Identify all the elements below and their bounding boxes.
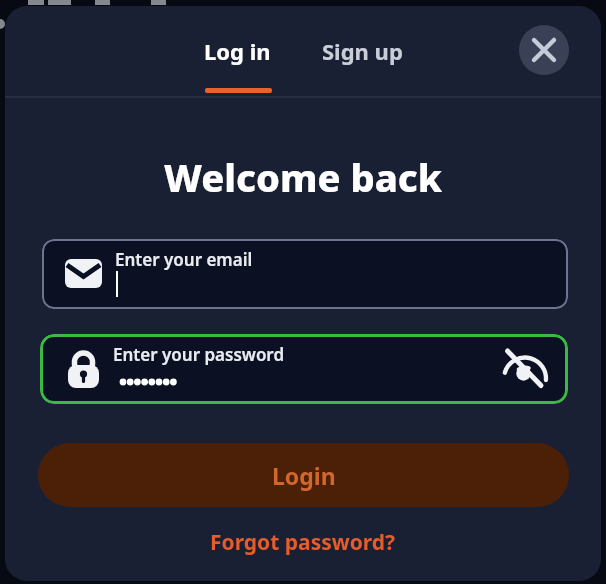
staticText: Welcome back [164,151,443,196]
staticText: Log in [204,36,271,66]
button[interactable]: Enter your password [40,334,568,404]
button[interactable] [519,25,569,75]
staticText: Sign up [322,36,403,66]
button[interactable] [494,338,556,400]
button[interactable]: Log in [190,20,285,82]
staticText: Enter your password [113,343,285,366]
button[interactable]: Login [38,443,569,507]
staticText: Enter your email [115,248,253,271]
staticText: Login [272,460,336,491]
button[interactable]: Enter your email [42,239,568,309]
button[interactable]: Forgot password? [210,528,396,557]
button[interactable]: Sign up [313,20,411,82]
